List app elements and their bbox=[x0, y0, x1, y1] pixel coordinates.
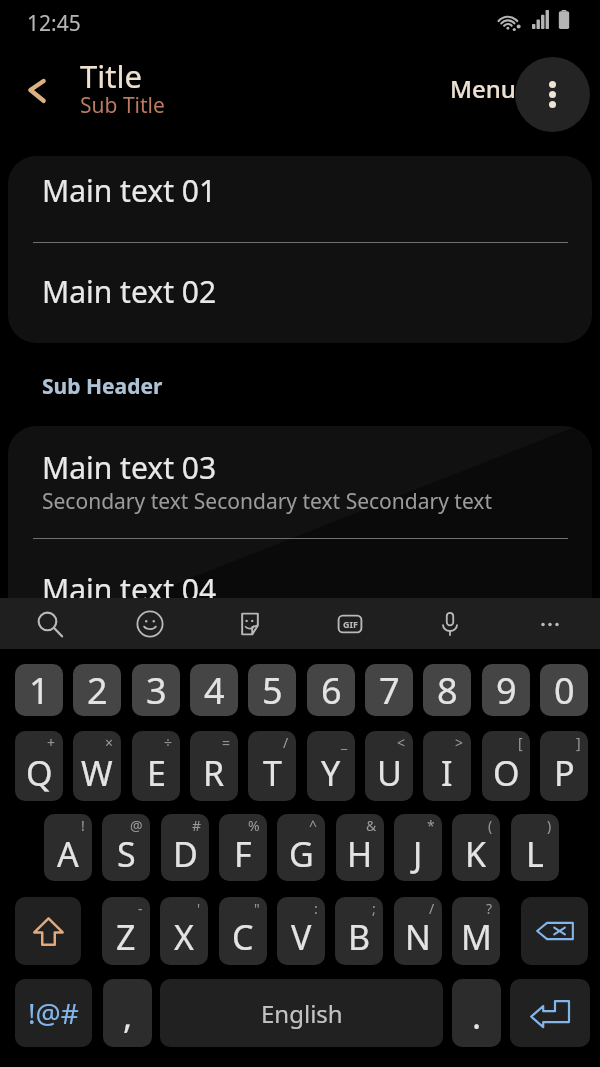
staticText: Main text 01 bbox=[42, 170, 217, 211]
staticText: U bbox=[377, 750, 402, 796]
button[interactable]: GIF bbox=[300, 598, 400, 649]
button[interactable]: Q bbox=[15, 731, 63, 801]
button[interactable]: 0 bbox=[540, 664, 588, 716]
staticText: 5 bbox=[262, 666, 283, 715]
button[interactable]: L bbox=[511, 814, 559, 881]
staticText: - bbox=[138, 899, 143, 918]
button[interactable]: Backspace bbox=[521, 897, 588, 965]
button[interactable]: T bbox=[248, 731, 296, 801]
button[interactable]: E bbox=[132, 731, 180, 801]
button[interactable]: Main text 01 bbox=[8, 156, 592, 242]
button[interactable]: A bbox=[44, 814, 92, 881]
staticText: Sub Title bbox=[80, 91, 165, 120]
button[interactable]: 7 bbox=[365, 664, 413, 716]
staticText: ' bbox=[197, 899, 201, 918]
staticText: : bbox=[314, 899, 318, 918]
button[interactable]: 3 bbox=[132, 664, 180, 716]
button[interactable]: S bbox=[102, 814, 150, 881]
button[interactable]: !@# bbox=[15, 979, 92, 1047]
button[interactable]: D bbox=[161, 814, 209, 881]
button[interactable]: 5 bbox=[248, 664, 296, 716]
staticText: GIF bbox=[343, 618, 358, 630]
button[interactable]: N bbox=[394, 897, 442, 965]
button[interactable]: C bbox=[219, 897, 267, 965]
button[interactable]: Menu bbox=[438, 64, 528, 112]
button[interactable]: , bbox=[103, 979, 152, 1047]
staticText: T bbox=[263, 750, 282, 796]
button[interactable]: Voice input bbox=[400, 598, 500, 649]
staticText: English bbox=[261, 997, 343, 1030]
button[interactable]: M bbox=[452, 897, 500, 965]
staticText: 1 bbox=[29, 666, 50, 715]
staticText: C bbox=[232, 914, 254, 960]
button[interactable]: Main text 03 bbox=[8, 426, 592, 538]
staticText: S bbox=[117, 831, 136, 877]
button[interactable]: 8 bbox=[423, 664, 471, 716]
staticText: % bbox=[248, 816, 260, 835]
button[interactable]: Emoji bbox=[100, 598, 200, 649]
staticText: 8 bbox=[437, 666, 458, 715]
button[interactable]: G bbox=[277, 814, 325, 881]
staticText: ; bbox=[372, 899, 376, 918]
staticText: = bbox=[222, 733, 231, 752]
button[interactable]: Sub Header bbox=[26, 366, 179, 407]
staticText: 7 bbox=[379, 666, 400, 715]
button[interactable]: I bbox=[423, 731, 471, 801]
staticText: D bbox=[173, 831, 198, 877]
staticText: , bbox=[123, 993, 133, 1039]
staticText: * bbox=[427, 816, 435, 835]
button[interactable]: Main text 04 bbox=[8, 539, 592, 639]
button[interactable]: 4 bbox=[190, 664, 238, 716]
button[interactable]: Stickers bbox=[200, 598, 300, 649]
button[interactable]: Z bbox=[102, 897, 150, 965]
staticText: Main text 04 bbox=[42, 569, 217, 610]
staticText: M bbox=[461, 914, 492, 960]
staticText: L bbox=[526, 831, 544, 877]
staticText: N bbox=[405, 914, 431, 960]
button[interactable]: Enter bbox=[510, 979, 590, 1047]
button[interactable]: H bbox=[336, 814, 384, 881]
button[interactable]: O bbox=[482, 731, 530, 801]
staticText: Sub Header bbox=[42, 372, 163, 401]
staticText: _ bbox=[341, 733, 348, 752]
staticText: F bbox=[234, 831, 252, 877]
staticText: 3 bbox=[146, 666, 167, 715]
button[interactable]: B bbox=[335, 897, 383, 965]
button[interactable]: X bbox=[160, 897, 208, 965]
staticText: @ bbox=[130, 816, 143, 835]
staticText: ? bbox=[486, 899, 493, 918]
button[interactable]: Main text 02 bbox=[8, 243, 592, 343]
staticText: V bbox=[291, 914, 312, 960]
staticText: ÷ bbox=[164, 733, 173, 752]
button[interactable]: R bbox=[190, 731, 238, 801]
staticText: & bbox=[366, 816, 377, 835]
button[interactable]: . bbox=[452, 979, 501, 1047]
button[interactable]: U bbox=[365, 731, 413, 801]
button[interactable]: 6 bbox=[307, 664, 355, 716]
staticText: Q bbox=[26, 750, 53, 796]
button[interactable]: Y bbox=[307, 731, 355, 801]
button[interactable]: Navigate up bbox=[13, 66, 61, 114]
button[interactable]: English bbox=[160, 979, 443, 1047]
staticText: I bbox=[441, 750, 453, 796]
staticText: > bbox=[455, 733, 464, 752]
button[interactable]: Search bbox=[0, 598, 100, 649]
button[interactable]: 1 bbox=[15, 664, 63, 716]
button[interactable]: W bbox=[73, 731, 121, 801]
staticText: [ bbox=[518, 733, 523, 752]
button[interactable]: 2 bbox=[73, 664, 121, 716]
button[interactable]: J bbox=[394, 814, 442, 881]
staticText: 2 bbox=[87, 666, 108, 715]
staticText: " bbox=[254, 899, 260, 918]
button[interactable]: P bbox=[540, 731, 588, 801]
staticText: < bbox=[397, 733, 406, 752]
button[interactable]: More options bbox=[515, 57, 590, 132]
staticText: O bbox=[493, 750, 520, 796]
button[interactable]: V bbox=[277, 897, 325, 965]
button[interactable]: More options bbox=[500, 598, 600, 649]
button[interactable]: F bbox=[219, 814, 267, 881]
button[interactable]: Shift bbox=[15, 897, 81, 965]
button[interactable]: 9 bbox=[482, 664, 530, 716]
button[interactable]: K bbox=[452, 814, 500, 881]
staticText: 4 bbox=[204, 666, 225, 715]
